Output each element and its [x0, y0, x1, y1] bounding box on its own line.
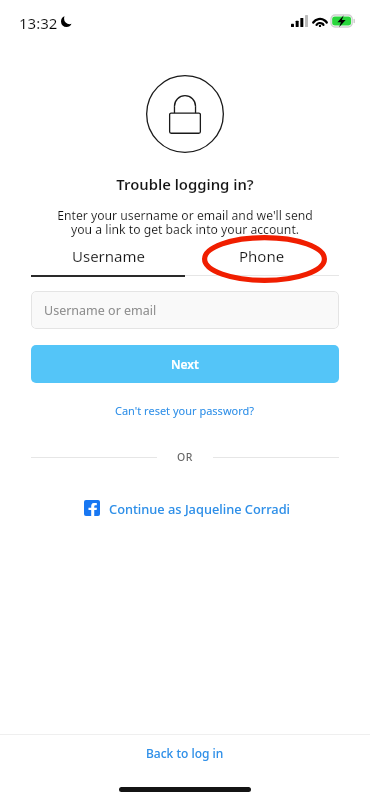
staticText: Next [171, 356, 199, 372]
button[interactable]: Can't reset your password? [0, 403, 370, 418]
button[interactable]: Phone [185, 241, 339, 270]
other: Highlight on Phone tab [202, 235, 327, 283]
staticText: Phone [239, 246, 285, 266]
staticText: Username or email [44, 302, 157, 319]
button[interactable]: Back to log in [0, 745, 370, 761]
staticText: Continue as Jaqueline Corradi [109, 500, 291, 517]
staticText: Trouble logging in? [0, 174, 370, 194]
staticText: Enter your username or email and we'll s… [0, 207, 370, 238]
button[interactable]: Username [31, 241, 185, 270]
staticText: Username [72, 246, 145, 266]
button[interactable]: Username or email [31, 291, 339, 329]
button[interactable]: Next [31, 345, 339, 383]
staticText: OR [177, 450, 193, 464]
staticText: Can't reset your password? [115, 403, 255, 418]
staticText: 13:32 [19, 13, 58, 33]
other: Facebook [84, 500, 100, 516]
button[interactable]: Facebook [84, 500, 291, 517]
staticText: Back to log in [146, 745, 224, 761]
